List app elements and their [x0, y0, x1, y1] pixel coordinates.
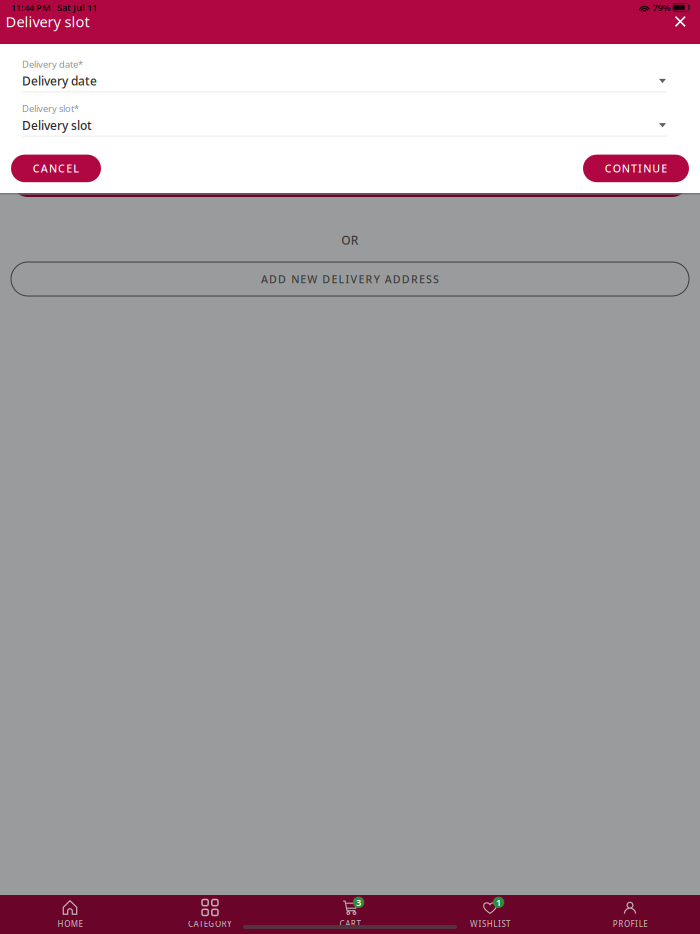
staticText: CONTINUE [605, 161, 667, 175]
button[interactable]: Delivery date* [0, 48, 700, 92]
staticText: ADD NEW DELIVERY ADDRESS [261, 272, 439, 286]
staticText: Delivery date* [22, 58, 83, 70]
button[interactable]: CATEGORY [140, 895, 280, 934]
staticText: Delivery slot [5, 12, 89, 31]
staticText: 3 [356, 896, 361, 908]
staticText: Delivery date [22, 73, 97, 89]
staticText: 1 [496, 896, 501, 908]
staticText: HOME [58, 918, 82, 929]
button[interactable]: 1 [420, 895, 560, 934]
staticText: CANCEL [33, 161, 79, 175]
button[interactable]: Delivery slot* [0, 92, 700, 137]
button[interactable]: CANCEL [11, 155, 101, 182]
button[interactable]: Close [668, 9, 692, 33]
button[interactable]: 3 [280, 895, 420, 934]
button[interactable]: CONTINUE [583, 155, 689, 182]
staticText: OR [341, 232, 359, 248]
staticText: Delivery slot [22, 117, 92, 133]
staticText: Delivery slot* [22, 102, 79, 115]
button[interactable]: HOME [0, 895, 140, 934]
button[interactable]: PROFILE [560, 895, 700, 934]
button[interactable]: ADD NEW DELIVERY ADDRESS [11, 262, 689, 296]
staticText: 79% [652, 1, 670, 14]
staticText: WISHLIST [470, 918, 510, 929]
staticText: PROFILE [613, 918, 647, 929]
staticText: 11:44 PM Sat Jul 11 [11, 1, 97, 14]
staticText: CART [340, 918, 360, 929]
staticText: CATEGORY [188, 918, 232, 929]
